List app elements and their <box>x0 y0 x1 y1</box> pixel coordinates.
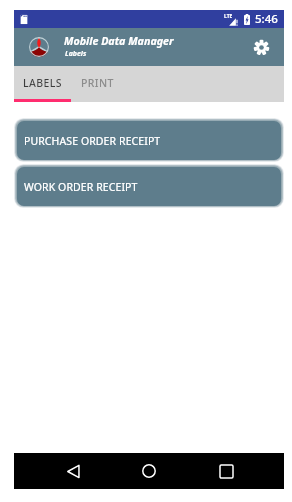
staticText: WORK ORDER RECEIPT <box>24 180 138 194</box>
staticText: LABELS <box>23 76 62 90</box>
button[interactable]: Settings <box>243 29 280 66</box>
staticText: Labels <box>65 49 87 59</box>
staticText: PRINT <box>81 76 114 90</box>
button[interactable]: LABELS <box>14 66 71 99</box>
button[interactable]: Recents <box>208 453 244 489</box>
button[interactable]: Home <box>131 453 167 489</box>
button[interactable]: Back <box>55 453 91 489</box>
button[interactable]: WORK ORDER RECEIPT <box>14 164 284 208</box>
staticText: LTE <box>224 13 233 20</box>
button[interactable]: PRINT <box>71 66 124 99</box>
staticText: PURCHASE ORDER RECEIPT <box>24 134 161 148</box>
staticText: 5:46 <box>255 11 278 27</box>
button[interactable]: PURCHASE ORDER RECEIPT <box>14 118 284 162</box>
staticText: Mobile Data Manager <box>64 34 174 49</box>
